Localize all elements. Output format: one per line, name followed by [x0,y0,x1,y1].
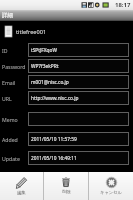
staticText: 2011/05/10 11:57:59 [31,136,77,143]
staticText: URL [2,95,12,102]
staticText: ID [2,47,8,54]
staticText: 編集 [17,190,26,195]
staticText: 詳細 [2,12,14,19]
staticText: Memo [2,116,18,123]
staticText: titlefree001 [16,28,47,36]
staticText: Password [2,63,26,70]
button[interactable]: Cancel [89,172,133,200]
button[interactable]: Edit [0,172,43,200]
staticText: WP7f3ekPRt [31,63,59,70]
staticText: Added [2,136,18,143]
staticText: http://www.nisc.co.jp [31,95,79,102]
staticText: キャンセル [100,190,122,195]
staticText: tSPtJFXqoW [31,47,57,54]
staticText: 削除 [62,189,71,194]
button[interactable]: Delete [44,172,88,200]
staticText: Email [2,79,16,86]
staticText: 18:17 [115,1,131,9]
staticText: 2011/05/10 16:49:11 [31,155,77,162]
staticText: Update [2,155,20,162]
staticText: m001@nisc.co.jp [31,79,69,86]
